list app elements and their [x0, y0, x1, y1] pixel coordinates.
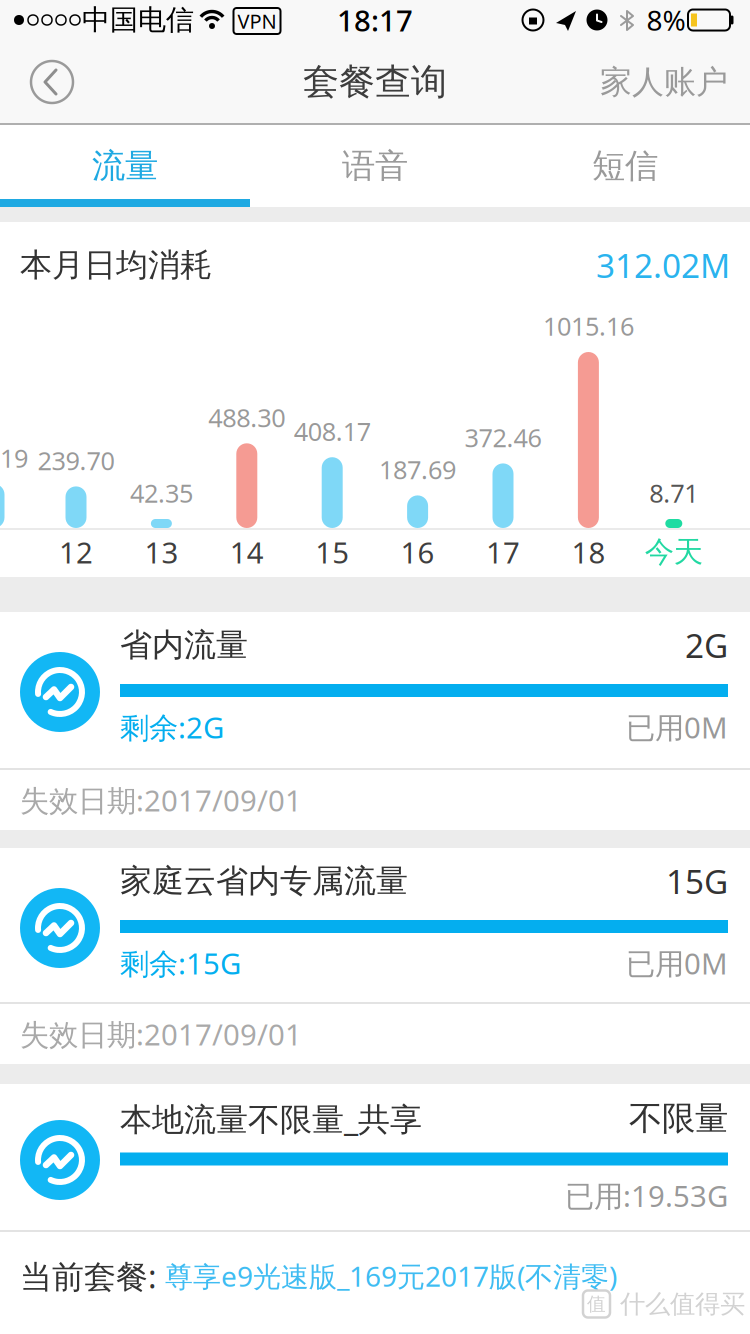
- button[interactable]: 流量: [0, 125, 250, 207]
- button[interactable]: 家人账户: [600, 62, 728, 102]
- button[interactable]: 尊享e9光速版_169元2017版(不清零): [165, 1257, 617, 1295]
- staticText: 17: [486, 532, 520, 571]
- staticText: 失效日期:2017/09/01: [20, 780, 302, 819]
- staticText: 中国电信: [82, 3, 194, 37]
- staticText: 18:17: [337, 0, 413, 39]
- staticText: 失效日期:2017/09/01: [20, 1014, 302, 1053]
- staticText: 剩余:15G: [120, 943, 241, 982]
- staticText: 不限量: [629, 1098, 728, 1139]
- staticText: VPN: [237, 8, 276, 34]
- button[interactable]: Back: [31, 61, 73, 103]
- staticText: 已用0M: [626, 707, 728, 746]
- staticText: 短信: [592, 145, 658, 186]
- staticText: 2G: [685, 623, 728, 667]
- staticText: 尊享e9光速版_169元2017版(不清零): [165, 1257, 617, 1295]
- staticText: 流量: [92, 145, 158, 186]
- staticText: 今天: [645, 534, 703, 570]
- staticText: 12: [59, 532, 93, 571]
- staticText: 239.70: [37, 444, 114, 477]
- staticText: 家人账户: [600, 62, 728, 102]
- staticText: 套餐查询: [303, 60, 447, 104]
- staticText: 8.71: [649, 476, 698, 510]
- staticText: 13: [144, 532, 178, 571]
- staticText: 已用0M: [626, 943, 728, 982]
- staticText: 408.17: [294, 414, 371, 448]
- staticText: 当前套餐:: [20, 1255, 165, 1297]
- staticText: 本月日均消耗: [20, 245, 212, 285]
- button[interactable]: 短信: [500, 125, 750, 207]
- staticText: 312.02M: [596, 243, 730, 287]
- staticText: 语音: [342, 145, 408, 186]
- staticText: 18: [571, 532, 605, 571]
- staticText: 187.69: [379, 453, 456, 486]
- staticText: 19: [0, 441, 28, 475]
- staticText: 值: [587, 1292, 606, 1315]
- staticText: 剩余:2G: [120, 707, 224, 746]
- staticText: 家庭云省内专属流量: [120, 861, 408, 901]
- staticText: 14: [230, 532, 264, 571]
- staticText: 8%: [646, 1, 685, 39]
- staticText: 已用:19.53G: [565, 1176, 728, 1215]
- staticText: 15G: [666, 859, 728, 903]
- staticText: 42.35: [130, 476, 193, 510]
- staticText: 16: [401, 532, 435, 571]
- staticText: 488.30: [208, 400, 285, 434]
- staticText: 372.46: [464, 421, 541, 454]
- staticText: 15: [315, 532, 349, 571]
- staticText: 本地流量不限量_共享: [120, 1097, 422, 1140]
- staticText: 省内流量: [120, 625, 248, 665]
- staticText: 什么值得买: [620, 1288, 745, 1319]
- staticText: 1015.16: [543, 309, 634, 343]
- button[interactable]: 语音: [250, 125, 500, 207]
